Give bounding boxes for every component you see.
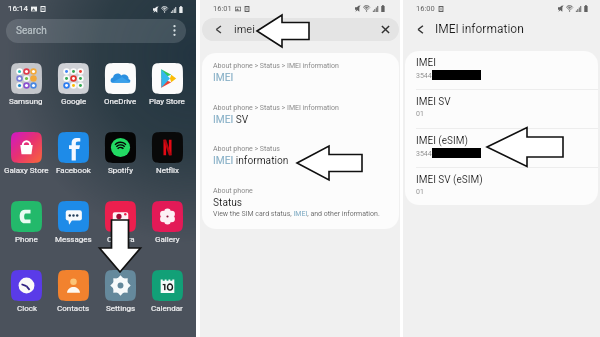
- button[interactable]: Calendar: [135, 270, 199, 313]
- staticText: 3544: [416, 72, 432, 80]
- staticText: OneDrive: [104, 97, 137, 106]
- staticText: Settings: [106, 304, 136, 313]
- button[interactable]: OneDrive: [88, 63, 152, 106]
- button[interactable]: About phone > Status > IMEI information: [202, 62, 399, 94]
- staticText: Gallery: [155, 235, 180, 244]
- button[interactable]: Settings: [88, 270, 152, 313]
- button[interactable]: Facebook: [41, 132, 105, 175]
- staticText: IMEI: [416, 57, 436, 69]
- staticText: Contacts: [57, 304, 90, 313]
- staticText: About phone: [213, 187, 253, 195]
- button[interactable]: IMEI SV (eSIM): [405, 174, 598, 205]
- button[interactable]: About phone > Status > IMEI information: [202, 104, 399, 136]
- staticText: Play Store: [149, 97, 185, 106]
- button[interactable]: Galaxy Store: [0, 132, 58, 175]
- staticText: Messages: [55, 235, 92, 244]
- button[interactable]: Contacts: [41, 270, 105, 313]
- staticText: 16:01: [213, 4, 232, 13]
- staticText: Camera: [107, 235, 135, 244]
- staticText: 01: [416, 188, 424, 196]
- button[interactable]: About phone > Status: [202, 145, 399, 177]
- button[interactable]: Play Store: [135, 63, 199, 106]
- staticText: About phone > Status > IMEI information: [213, 62, 339, 70]
- staticText: 3544: [416, 150, 432, 158]
- staticText: IMEI information: [435, 22, 524, 36]
- staticText: 16:14: [8, 4, 28, 13]
- button[interactable]: IMEI (eSIM): [405, 135, 598, 167]
- button[interactable]: Clear search: [381, 25, 390, 34]
- staticText: Phone: [15, 235, 38, 244]
- button[interactable]: Camera: [88, 201, 152, 244]
- button[interactable]: Search: [6, 19, 186, 43]
- button[interactable]: Phone: [0, 201, 58, 244]
- button[interactable]: About phone: [202, 187, 399, 227]
- staticText: Status: [213, 197, 243, 209]
- button[interactable]: Messages: [41, 201, 105, 244]
- button[interactable]: Clock: [0, 270, 58, 313]
- button[interactable]: IMEI: [405, 57, 598, 89]
- staticText: IMEI SV: [213, 114, 249, 126]
- staticText: 16:00: [416, 4, 435, 13]
- staticText: 01: [416, 110, 424, 118]
- staticText: Spotify: [108, 166, 133, 175]
- staticText: Facebook: [56, 166, 91, 175]
- staticText: Samsung: [9, 97, 43, 106]
- staticText: About phone > Status: [213, 145, 280, 153]
- staticText: Netflix: [156, 166, 180, 175]
- button[interactable]: IMEI SV: [405, 96, 598, 128]
- button[interactable]: Back: [415, 18, 524, 40]
- staticText: View the SIM card status, IMEI, and othe…: [213, 210, 380, 218]
- staticText: Clock: [17, 304, 37, 313]
- staticText: IMEI SV (eSIM): [416, 174, 483, 186]
- button[interactable]: Samsung: [0, 63, 58, 106]
- staticText: IMEI (eSIM): [416, 135, 468, 147]
- button[interactable]: Back: [213, 24, 224, 35]
- staticText: About phone > Status > IMEI information: [213, 104, 339, 112]
- button[interactable]: Netflix: [135, 132, 199, 175]
- staticText: Calendar: [151, 304, 183, 313]
- staticText: Google: [61, 97, 87, 106]
- staticText: IMEI: [213, 72, 234, 84]
- staticText: IMEI SV: [416, 96, 451, 108]
- staticText: Galaxy Store: [4, 166, 49, 175]
- button[interactable]: Back: [202, 18, 399, 41]
- button[interactable]: Google: [41, 63, 105, 106]
- staticText: imei: [234, 23, 255, 36]
- button[interactable]: Spotify: [88, 132, 152, 175]
- button[interactable]: Gallery: [135, 201, 199, 244]
- staticText: IMEI information: [213, 155, 289, 167]
- staticText: Search: [16, 25, 47, 37]
